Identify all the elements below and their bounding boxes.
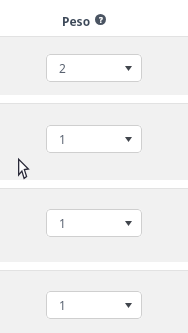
button[interactable]: Ayuda sobre Peso: [95, 14, 106, 25]
button[interactable]: Peso 1: [46, 125, 142, 153]
staticText: 1: [59, 215, 66, 231]
staticText: 1: [59, 131, 66, 147]
staticText: ?: [99, 14, 103, 25]
button[interactable]: Peso 1: [0, 270, 188, 333]
button[interactable]: Peso 1: [46, 291, 142, 319]
staticText: Peso: [62, 13, 91, 29]
staticText: 1: [59, 297, 66, 313]
button[interactable]: Peso 1: [0, 103, 188, 180]
button[interactable]: Peso 1: [0, 188, 188, 262]
staticText: 2: [59, 60, 66, 76]
button[interactable]: Peso 2: [46, 54, 142, 82]
button[interactable]: Peso 2: [0, 36, 188, 95]
button[interactable]: Peso 1: [46, 209, 142, 237]
